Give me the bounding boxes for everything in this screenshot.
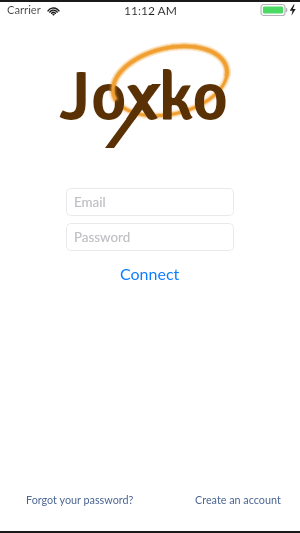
button[interactable]: Forgot your password? <box>26 493 134 506</box>
staticText: Password <box>74 229 131 245</box>
button[interactable]: Connect <box>66 264 234 283</box>
staticText: Connect <box>120 264 180 283</box>
staticText: 11:12 AM <box>124 3 177 17</box>
button[interactable]: Password <box>66 223 234 251</box>
staticText: Joxko <box>59 54 229 139</box>
staticText: Forgot your password? <box>26 493 134 506</box>
staticText: Email <box>74 194 106 210</box>
staticText: Create an account <box>195 493 281 506</box>
button[interactable]: Create an account <box>195 493 281 506</box>
button[interactable]: Email <box>66 188 234 216</box>
staticText: Carrier <box>7 3 41 16</box>
